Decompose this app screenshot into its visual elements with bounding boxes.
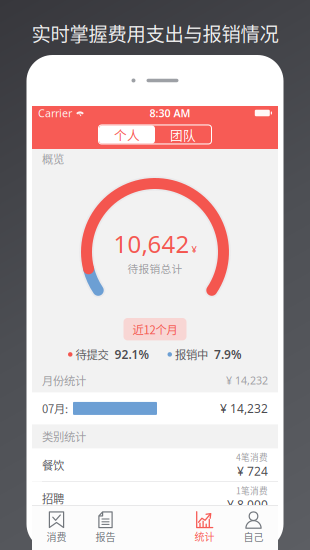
staticText: 个人 [114, 125, 140, 144]
button[interactable]: 统计 [180, 505, 229, 549]
staticText: 自己 [243, 529, 263, 544]
staticText: 报告 [95, 529, 115, 544]
staticText: 07月: [42, 400, 68, 417]
button[interactable]: 消费 [32, 505, 81, 549]
staticText: 10,642 [113, 228, 189, 260]
staticText: 7.9% [208, 346, 242, 362]
staticText: 月份统计 [42, 372, 86, 389]
staticText: 消费 [46, 529, 66, 544]
staticText: 1笔消费 [236, 484, 268, 497]
staticText: 报销中 [172, 346, 208, 363]
button[interactable]: 自己 [229, 505, 278, 549]
button[interactable]: 招聘 [32, 482, 278, 515]
button[interactable]: 近12个月 [123, 318, 186, 340]
staticText: 概览 [42, 150, 64, 167]
staticText: 类别统计 [42, 428, 86, 445]
staticText: ¥ 14,232 [220, 400, 268, 416]
staticText: ¥ 8,000 [227, 497, 268, 513]
staticText: 餐饮 [42, 457, 64, 473]
button[interactable]: 个人 [99, 125, 155, 143]
staticText: 统计 [194, 529, 214, 544]
staticText: 8:30 AM [149, 106, 190, 120]
button[interactable]: 报告 [81, 505, 130, 549]
staticText: 团队 [170, 125, 196, 144]
button[interactable]: 团队 [155, 125, 211, 143]
button[interactable]: 07月: [32, 392, 278, 424]
staticText: 待提交 [72, 346, 108, 363]
staticText: 近12个月 [132, 321, 177, 337]
staticText: Carrier [38, 106, 72, 120]
staticText: 待报销总计 [127, 261, 182, 276]
staticText: 实时掌握费用支出与报销情况 [31, 19, 278, 47]
staticText: 招聘 [42, 490, 64, 507]
button[interactable]: 餐饮 [32, 448, 278, 481]
staticText: ¥ [191, 243, 196, 256]
staticText: 92.1% [108, 346, 149, 362]
staticText: 4笔消费 [236, 451, 268, 463]
staticText: ¥ 14,232 [226, 373, 268, 387]
staticText: ¥ 724 [237, 463, 268, 479]
